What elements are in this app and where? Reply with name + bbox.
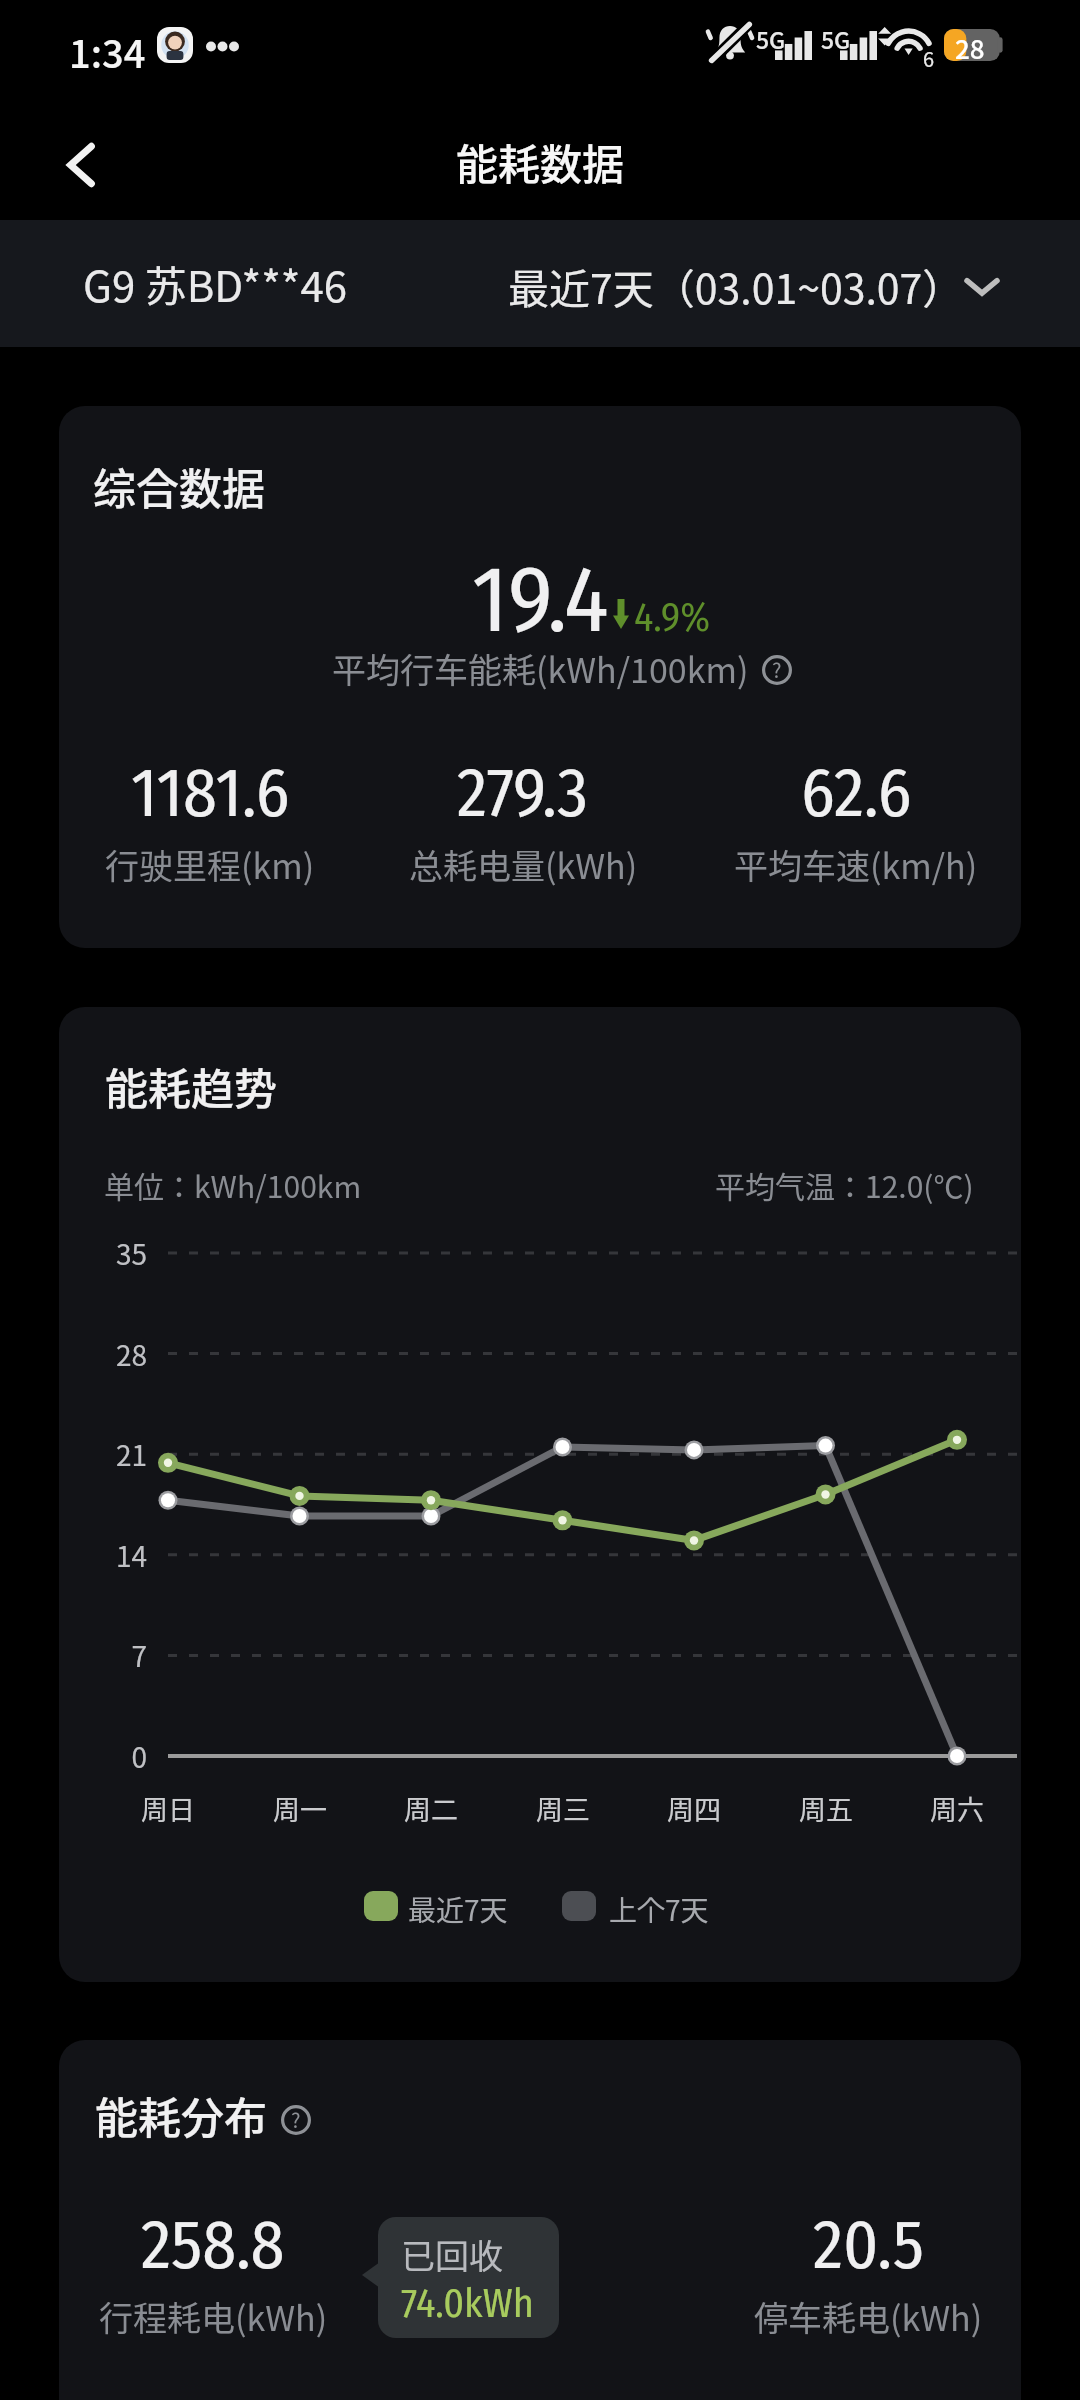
staticText: 74.0kWh (401, 2280, 534, 2328)
staticText: ? (772, 655, 782, 684)
staticText: 周三 (536, 1789, 590, 1828)
staticText: 5G (756, 22, 786, 55)
staticText: 周日 (141, 1789, 195, 1828)
staticText: 28 (955, 29, 985, 61)
staticText: 6 (923, 44, 935, 73)
staticText: 平均行车能耗(kWh/100km) (332, 644, 749, 693)
staticText: 14 (115, 1535, 147, 1576)
staticText: 能耗分布 (95, 2084, 267, 2146)
staticText: 279.3 (457, 752, 589, 834)
staticText: 行驶里程(km) (105, 840, 315, 889)
staticText: 258.8 (141, 2204, 285, 2286)
staticText: 21 (115, 1434, 147, 1475)
staticText: 周二 (404, 1789, 458, 1828)
staticText: 35 (115, 1233, 147, 1274)
staticText: 周六 (930, 1789, 984, 1828)
staticText: 停车耗电(kWh) (754, 2292, 983, 2341)
staticText: 单位：kWh/100km (104, 1163, 362, 1206)
staticText: 1:34 (69, 24, 146, 79)
staticText: G9 苏BD***46 (83, 253, 348, 314)
button[interactable]: 最近7天（03.01~03.07） (486, 242, 1035, 329)
staticText: 62.6 (801, 752, 912, 834)
staticText: 平均车速(km/h) (734, 840, 978, 889)
staticText: 能耗趋势 (105, 1055, 277, 1117)
staticText: 周四 (667, 1789, 721, 1828)
staticText: 4.9% (634, 594, 711, 642)
staticText: 总耗电量(kWh) (409, 840, 638, 889)
staticText: 能耗数据 (456, 131, 625, 192)
staticText: 最近7天（03.01~03.07） (508, 256, 964, 315)
staticText: 行程耗电(kWh) (99, 2292, 328, 2341)
staticText: 综合数据 (93, 455, 265, 517)
button[interactable]: Back (38, 122, 124, 208)
staticText: 20.5 (813, 2204, 924, 2286)
staticText: 最近7天 (408, 1889, 508, 1930)
staticText: 已回收 (401, 2230, 503, 2279)
staticText: 平均气温：12.0(℃) (715, 1163, 974, 1206)
staticText: 19.4 (472, 545, 609, 655)
staticText: 上个7天 (609, 1889, 709, 1930)
button[interactable]: Help (762, 655, 792, 685)
staticText: 0 (131, 1736, 147, 1777)
staticText: 周一 (273, 1789, 327, 1828)
staticText: 5G (821, 22, 851, 55)
staticText: ? (291, 2105, 301, 2134)
staticText: 1181.6 (131, 752, 290, 834)
button[interactable]: Help (281, 2105, 311, 2135)
staticText: 7 (131, 1635, 147, 1676)
staticText: 28 (115, 1334, 147, 1375)
staticText: 周五 (799, 1789, 853, 1828)
